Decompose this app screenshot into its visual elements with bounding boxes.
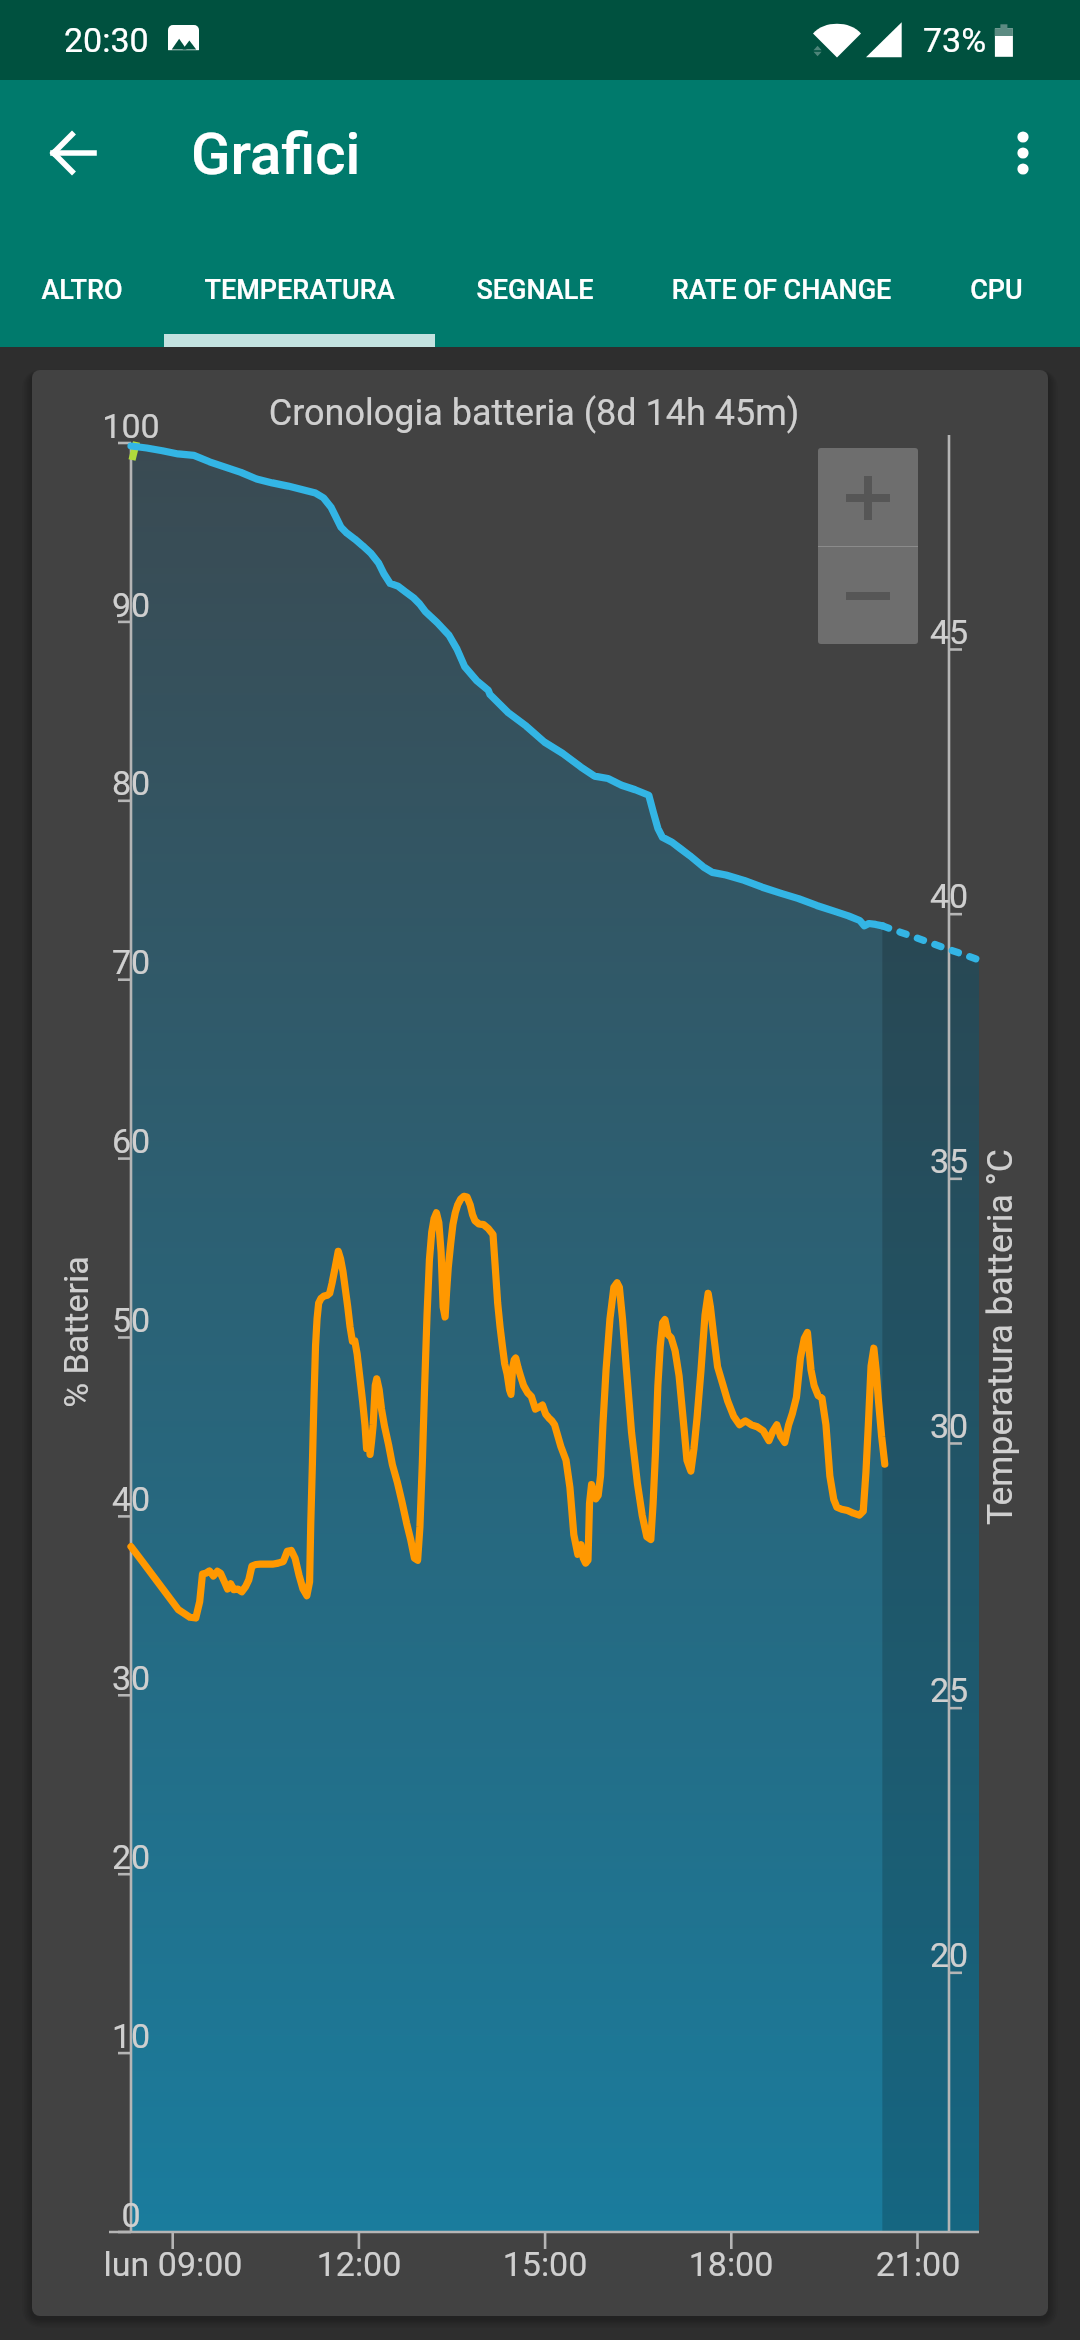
staticText: 30: [799, 1406, 1080, 1446]
staticText: 10: [0, 2016, 281, 2056]
staticText: 35: [799, 1141, 1080, 1181]
staticText: 60: [0, 1121, 281, 1161]
staticText: 12:00: [159, 2244, 559, 2284]
staticText: 20:30: [64, 20, 264, 60]
staticText: 40: [0, 1479, 281, 1519]
staticText: SEGNALE: [435, 274, 635, 306]
staticText: 100: [0, 406, 281, 446]
staticText: 50: [0, 1300, 281, 1340]
button[interactable]: More options: [975, 105, 1071, 201]
staticText: Cronologia batteria (8d 14h 45m): [184, 392, 884, 434]
staticText: ALTRO: [0, 274, 164, 306]
staticText: 40: [799, 876, 1080, 916]
button[interactable]: Back: [25, 105, 121, 201]
button[interactable]: SEGNALE: [435, 255, 635, 347]
staticText: Temperatura batteria °C: [979, 1087, 1021, 1587]
button[interactable]: Zoom in: [818, 448, 918, 547]
staticText: 21:00: [718, 2244, 1080, 2284]
staticText: TEMPERATURA: [164, 274, 435, 306]
staticText: lun 09:00: [0, 2244, 373, 2284]
staticText: 70: [0, 942, 281, 982]
staticText: 20: [799, 1935, 1080, 1975]
staticText: 15:00: [345, 2244, 745, 2284]
staticText: CPU: [928, 274, 1065, 306]
staticText: RATE OF CHANGE: [635, 274, 928, 306]
button[interactable]: Zoom out: [818, 547, 918, 644]
staticText: % Batteria: [56, 1132, 96, 1532]
staticText: 73%: [923, 20, 1080, 60]
staticText: 25: [799, 1670, 1080, 1710]
staticText: 80: [0, 763, 281, 803]
button[interactable]: RATE OF CHANGE: [635, 255, 928, 347]
staticText: 18:00: [531, 2244, 931, 2284]
staticText: 0: [0, 2195, 281, 2235]
button[interactable]: CPU: [928, 255, 1065, 347]
staticText: Grafici: [191, 120, 591, 188]
staticText: 90: [0, 585, 281, 625]
button[interactable]: ALTRO: [0, 255, 164, 347]
staticText: 20: [0, 1837, 281, 1877]
staticText: 30: [0, 1658, 281, 1698]
button[interactable]: TEMPERATURA: [164, 255, 435, 347]
staticText: 45: [799, 612, 1080, 652]
